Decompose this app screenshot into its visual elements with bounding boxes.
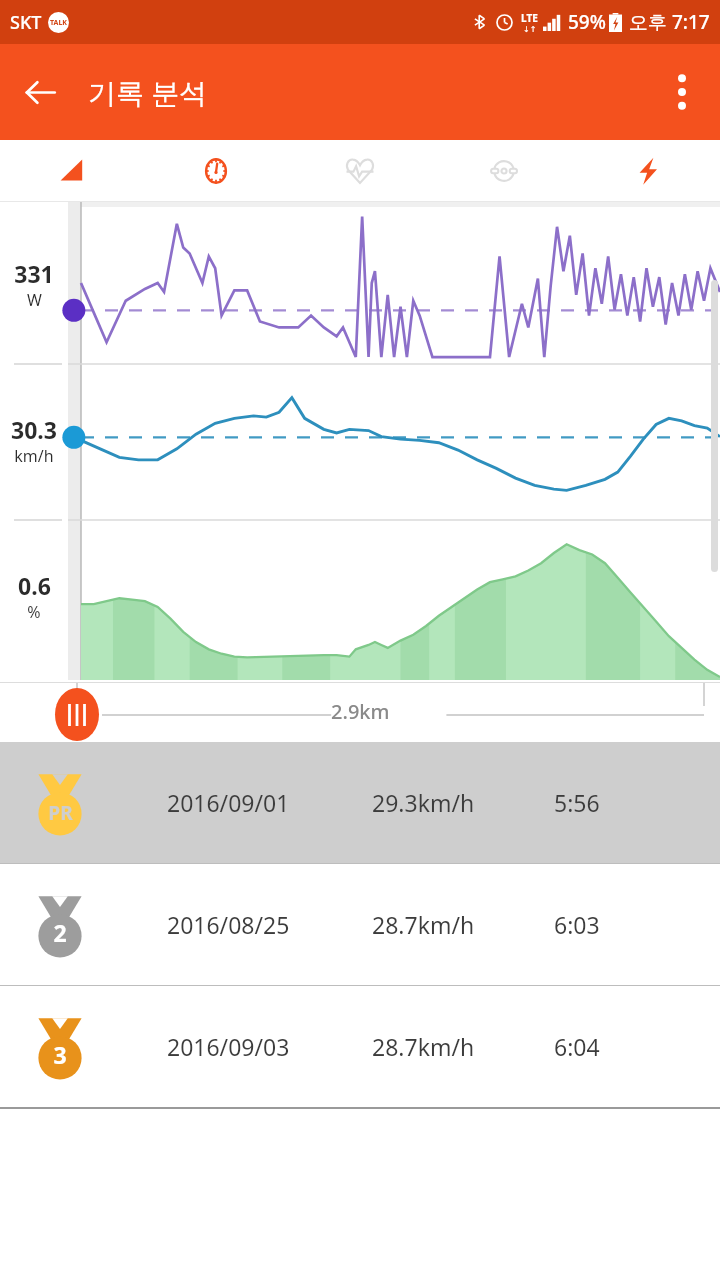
staticText: 59% [568,9,606,35]
staticText: 29.3km/h [372,787,475,818]
staticText: 6:03 [554,909,600,940]
staticText: % [27,601,41,623]
staticText: 5:56 [554,787,600,818]
button[interactable]: Heart rate [288,140,432,202]
button[interactable]: 3 [0,986,720,1107]
button[interactable]: Power [576,140,720,202]
staticText: km/h [14,445,54,467]
staticText: 기록 분석 [88,73,208,111]
staticText: 0.6 [18,570,51,601]
button[interactable]: Back [8,60,72,124]
staticText: SKT [10,10,42,35]
staticText: ↓↑ [523,25,537,34]
staticText: 오후 7:17 [629,9,710,35]
staticText: 2016/09/01 [167,787,290,818]
button[interactable]: 2 [0,864,720,985]
staticText: 3 [53,1039,67,1070]
button[interactable]: Distance scrubber [0,682,720,742]
staticText: 2016/09/03 [167,1031,290,1062]
staticText: PR [48,800,73,826]
button[interactable]: More options [650,60,714,124]
staticText: 2.9km [331,698,390,725]
button[interactable]: Cadence [432,140,576,202]
button[interactable]: Elevation [0,140,144,202]
staticText: TALK [50,18,67,28]
staticText: 28.7km/h [372,909,475,940]
button[interactable]: PR [0,742,720,863]
staticText: 2 [53,917,67,948]
staticText: 30.3 [11,414,57,445]
staticText: 2016/08/25 [167,909,290,940]
staticText: 331 [14,258,54,289]
staticText: LTE [521,11,538,25]
staticText: W [27,289,42,311]
staticText: 28.7km/h [372,1031,475,1062]
staticText: 6:04 [554,1031,600,1062]
button[interactable]: Speed [144,140,288,202]
